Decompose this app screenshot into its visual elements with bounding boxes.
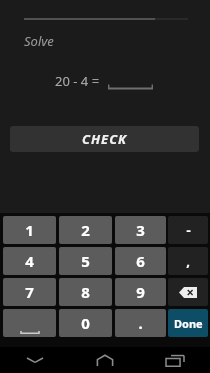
staticText: 6 — [136, 251, 145, 271]
button[interactable]: , — [168, 247, 208, 275]
button[interactable]: 4 — [3, 247, 56, 275]
staticText: 7 — [25, 282, 34, 302]
staticText: Solve — [24, 32, 54, 50]
button[interactable] — [108, 72, 153, 90]
button[interactable]: CHECK — [10, 126, 199, 152]
button[interactable]: . — [115, 309, 166, 337]
button[interactable]: Space — [3, 309, 56, 337]
staticText: 20 - 4 = — [55, 72, 100, 90]
staticText: 3 — [136, 220, 145, 240]
staticText: . — [138, 313, 143, 333]
button[interactable]: 5 — [59, 247, 112, 275]
staticText: 2 — [81, 220, 90, 240]
button[interactable]: 6 — [115, 247, 166, 275]
staticText: 5 — [81, 251, 90, 271]
button[interactable]: 2 — [59, 216, 112, 244]
staticText: 9 — [136, 282, 145, 302]
staticText: 4 — [25, 251, 34, 271]
button[interactable]: Recents — [140, 347, 210, 373]
staticText: 0 — [81, 313, 90, 333]
button[interactable]: 8 — [59, 278, 112, 306]
button[interactable]: Done — [168, 309, 208, 337]
staticText: - — [186, 221, 191, 239]
button[interactable]: Home — [70, 347, 140, 373]
staticText: CHECK — [82, 130, 128, 148]
staticText: Done — [174, 316, 203, 331]
button[interactable]: 3 — [115, 216, 166, 244]
button[interactable]: - — [168, 216, 208, 244]
button[interactable]: 1 — [3, 216, 56, 244]
button[interactable]: Back — [0, 347, 70, 373]
staticText: 1 — [25, 220, 34, 240]
button[interactable]: 0 — [59, 309, 112, 337]
button[interactable]: 9 — [115, 278, 166, 306]
button[interactable]: 7 — [3, 278, 56, 306]
staticText: 8 — [81, 282, 90, 302]
staticText: , — [186, 252, 190, 270]
button[interactable]: Backspace — [168, 278, 208, 306]
